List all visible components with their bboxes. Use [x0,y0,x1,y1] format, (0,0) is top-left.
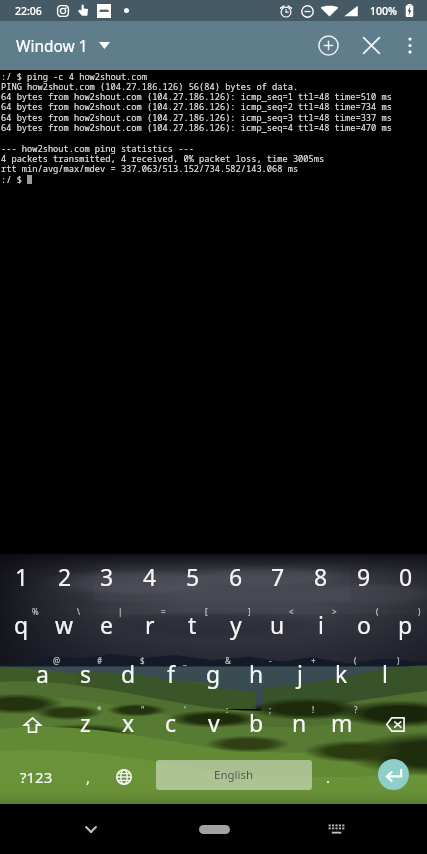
staticText: u [270,609,285,640]
button[interactable]: [ [171,602,214,651]
button[interactable]: $ [107,651,150,700]
button[interactable]: \ [43,602,86,651]
button[interactable]: Change language [102,749,145,804]
staticText: s [80,658,92,689]
staticText: ( [354,655,357,666]
staticText: % [32,606,39,617]
staticText: :/ $ ping -c 4 how2shout.com [1,71,147,83]
button[interactable]: 1 [0,554,43,602]
button[interactable]: 4 [128,554,171,602]
staticText: r [145,609,155,640]
button[interactable]: ! [278,700,321,749]
staticText: :/ $ [1,174,22,186]
staticText: p [398,609,413,640]
staticText: l [382,658,388,689]
button[interactable]: ' [149,700,192,749]
staticText: 64 bytes from how2shout.com (104.27.186.… [1,122,392,134]
button[interactable]: 7 [256,554,299,602]
button[interactable]: % [0,602,43,651]
button[interactable]: 2 [43,554,86,602]
staticText: q [14,609,29,640]
button[interactable]: ( [320,651,363,700]
staticText: Window 1 [16,35,88,56]
staticText: 1 [15,561,29,592]
staticText: a [36,658,49,689]
button[interactable]: ?123 [0,749,73,804]
button[interactable]: 5 [171,554,214,602]
staticText: - [269,655,272,666]
staticText: * [97,704,102,715]
staticText: ' [184,704,186,715]
button[interactable]: ) [384,602,427,651]
staticText: ( [376,606,379,617]
button[interactable]: English [156,760,312,790]
button[interactable]: Shift [0,700,64,749]
staticText: . [326,767,331,787]
button[interactable]: # [64,651,107,700]
button[interactable]: ; [235,700,278,749]
staticText: g [206,658,221,689]
staticText: 6 [229,561,243,592]
button[interactable]: ( [342,602,385,651]
staticText: English [214,767,254,783]
button[interactable]: " [107,700,150,749]
staticText: $ [140,655,145,666]
button[interactable]: : [192,700,235,749]
button[interactable]: New session [306,21,350,70]
button[interactable]: More options [392,21,427,70]
button[interactable]: ) [363,651,406,700]
button[interactable]: & [192,651,235,700]
button[interactable]: ? [320,700,363,749]
button[interactable]: - [235,651,278,700]
staticText: = [161,606,166,617]
staticText: z [80,707,91,738]
button[interactable]: > [299,602,342,651]
button[interactable]: = [128,602,171,651]
staticText: 100% [370,4,397,18]
button[interactable]: 6 [214,554,257,602]
staticText: j [297,658,303,689]
staticText: k [335,658,348,689]
staticText: ) [418,606,421,617]
staticText: ?123 [20,767,53,787]
button[interactable]: < [256,602,299,651]
button[interactable]: Window 1 [8,21,118,70]
staticText: \ [77,606,80,617]
staticText: 4 packets transmitted, 4 received, 0% pa… [1,153,325,165]
button[interactable]: 0 [384,554,427,602]
button[interactable]: Close [350,21,392,70]
staticText: 0 [399,561,413,592]
button[interactable]: 8 [299,554,342,602]
staticText: h [249,658,264,689]
button[interactable]: . [312,749,344,804]
staticText: PING how2shout.com (104.27.186.126) 56(8… [1,81,299,93]
staticText: y [230,609,242,640]
button[interactable]: Hide keyboard [69,807,113,851]
staticText: # [97,655,103,666]
button[interactable]: , [73,749,103,804]
button[interactable]: Home [192,807,236,851]
staticText: _ [183,655,187,666]
button[interactable]: Enter [378,759,409,790]
staticText: > [332,606,337,617]
button[interactable]: * [64,700,107,749]
button[interactable]: | [85,602,128,651]
staticText: ! [312,704,315,715]
staticText: ? [354,704,358,715]
button[interactable]: 3 [85,554,128,602]
button[interactable]: + [278,651,321,700]
staticText: c [165,707,177,738]
staticText: i [318,609,324,640]
button[interactable]: Switch keyboard [314,807,358,851]
button[interactable]: _ [149,651,192,700]
button[interactable]: 9 [342,554,385,602]
button[interactable]: Backspace [363,700,427,749]
staticText: 5 [186,561,200,592]
staticText: ; [269,704,272,715]
button[interactable]: ] [214,602,257,651]
staticText: --- how2shout.com ping statistics --- [1,143,194,155]
staticText: v [208,707,220,738]
staticText: + [311,655,316,666]
staticText: | [118,606,123,617]
button[interactable]: @ [21,651,64,700]
